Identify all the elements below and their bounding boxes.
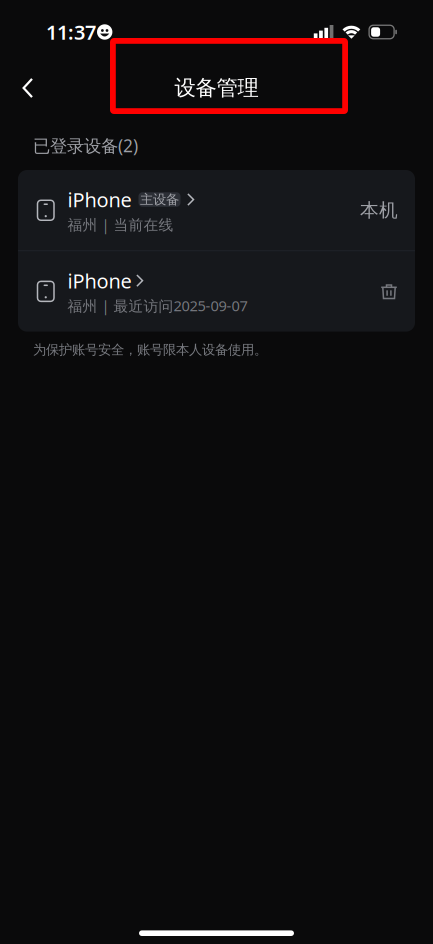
button[interactable]: iPhone [18,251,367,332]
staticText: 福州 | 当前在线 [67,215,173,234]
staticText: iPhone [67,267,131,294]
staticText: 福州 | 最近访问2025-09-07 [67,296,247,315]
button[interactable]: Back [6,66,50,110]
staticText: 已登录设备(2) [33,134,138,157]
staticText: 为保护账号安全，账号限本人设备使用。 [33,342,267,358]
button[interactable]: 移除设备 [367,269,415,313]
staticText: iPhone [67,186,131,213]
staticText: 本机 [360,199,398,222]
staticText: 11:37 [46,19,96,45]
staticText: 主设备 [140,191,179,208]
button[interactable]: iPhone [18,170,360,250]
staticText: 设备管理 [174,75,258,101]
